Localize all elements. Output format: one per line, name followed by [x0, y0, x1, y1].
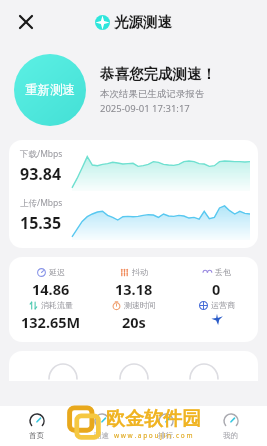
staticText: 消耗流量 — [41, 300, 73, 310]
staticText: 抖动 — [132, 267, 148, 277]
staticText: 排行 — [158, 431, 173, 440]
button[interactable]: 运营商 — [175, 300, 258, 326]
staticText: 运营商 — [211, 300, 235, 310]
staticText: 丢包 — [215, 267, 231, 277]
button[interactable]: 丢包 — [175, 267, 258, 299]
staticText: w w w . a p o u j i n . c o m — [114, 431, 193, 440]
staticText: 欧金软件园 — [106, 407, 201, 431]
staticText: 13.18 — [115, 279, 153, 299]
staticText: 恭喜您完成测速！ — [100, 65, 216, 83]
staticText: 本次结果已生成记录报告 — [100, 88, 205, 100]
button[interactable]: 消耗流量 — [9, 300, 92, 332]
button[interactable]: 重新测速 — [14, 54, 86, 126]
button[interactable] — [9, 351, 258, 381]
staticText: 0 — [212, 279, 221, 299]
button[interactable]: 测速 — [74, 406, 129, 446]
button[interactable]: 抖动 — [92, 267, 175, 299]
staticText: 93.84 — [20, 163, 62, 185]
staticText: 测速时间 — [124, 300, 156, 310]
button[interactable]: 排行 — [138, 406, 193, 446]
staticText: 下载/Mbps — [20, 148, 63, 160]
button[interactable]: 延迟 — [9, 257, 258, 342]
button[interactable]: 首页 — [9, 406, 64, 446]
staticText: 20s — [122, 312, 146, 332]
button[interactable]: 延迟 — [9, 267, 92, 299]
button[interactable]: 测速时间 — [92, 300, 175, 332]
button[interactable]: 我的 — [203, 406, 258, 446]
staticText: 2025-09-01 17:31:17 — [100, 102, 190, 115]
staticText: 首页 — [29, 431, 44, 440]
staticText: 测速 — [94, 431, 109, 440]
staticText: 重新测速 — [25, 82, 75, 98]
staticText: 上传/Mbps — [20, 197, 63, 209]
button[interactable]: 下载/Mbps — [9, 140, 258, 248]
staticText: 我的 — [223, 431, 238, 440]
staticText: 15.35 — [20, 212, 62, 234]
staticText: 14.86 — [32, 279, 70, 299]
button[interactable]: Close — [10, 6, 42, 38]
staticText: 132.65M — [21, 312, 81, 332]
staticText: 延迟 — [49, 267, 65, 277]
staticText: 光源测速 — [114, 13, 172, 31]
